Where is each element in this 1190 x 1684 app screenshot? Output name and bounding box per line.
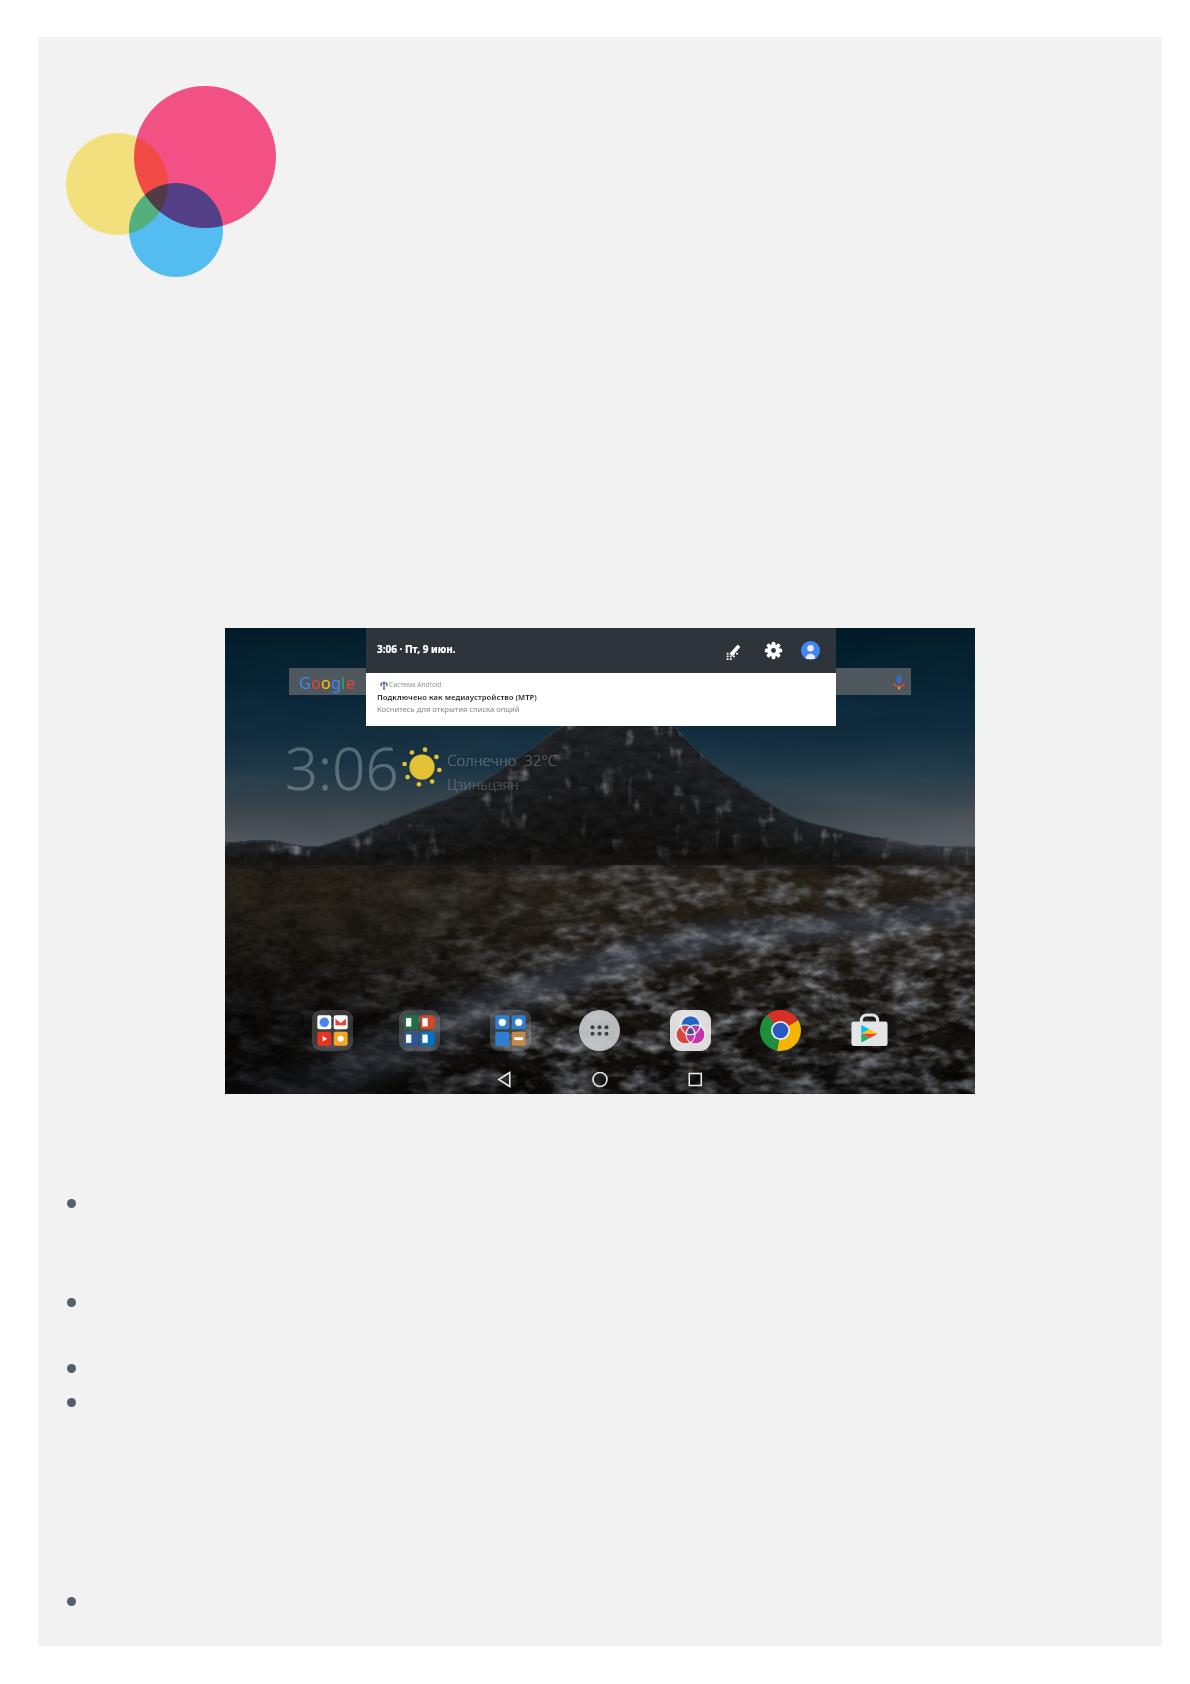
staticText: G bbox=[299, 672, 311, 694]
button[interactable]: Edit bbox=[724, 641, 743, 660]
button[interactable]: Office folder bbox=[399, 1010, 440, 1051]
staticText: l bbox=[341, 672, 346, 694]
button[interactable]: Google search bbox=[289, 668, 911, 695]
button[interactable]: Photos bbox=[670, 1010, 711, 1051]
staticText: Коснитесь для открытия списка опций bbox=[377, 704, 520, 714]
staticText: 3:06 bbox=[285, 728, 399, 807]
button[interactable]: Settings bbox=[764, 641, 783, 660]
button[interactable]: Lenovo folder bbox=[490, 1010, 531, 1051]
staticText: e bbox=[346, 672, 356, 694]
staticText: Солнечно 32°C bbox=[447, 750, 558, 770]
staticText: Цзиньцзян bbox=[447, 775, 519, 794]
staticText: 3:06 · Пт, 9 июн. bbox=[377, 642, 456, 656]
staticText: o bbox=[311, 672, 321, 694]
button[interactable]: Google folder bbox=[312, 1010, 353, 1051]
staticText: Подключено как медиаустройство (MTP) bbox=[377, 692, 537, 702]
button[interactable]: Система Android bbox=[366, 673, 836, 726]
button[interactable]: Play Store bbox=[849, 1010, 890, 1051]
button[interactable]: Account bbox=[801, 641, 820, 660]
staticText: o bbox=[321, 672, 331, 694]
staticText: g bbox=[331, 672, 341, 694]
staticText: Система Android bbox=[389, 680, 442, 689]
button[interactable]: Chrome bbox=[760, 1010, 801, 1051]
button[interactable]: All apps bbox=[579, 1010, 620, 1051]
